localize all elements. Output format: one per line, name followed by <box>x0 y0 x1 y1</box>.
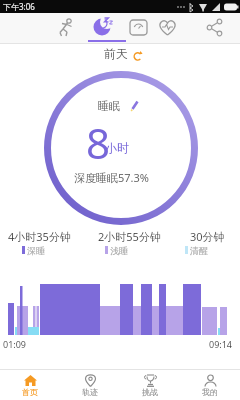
staticText: 深度睡眠57.3% <box>74 170 149 185</box>
button[interactable] <box>204 17 226 39</box>
staticText: 睡眠 <box>98 99 120 113</box>
button[interactable]: 首页 <box>0 370 60 400</box>
button[interactable] <box>90 17 116 39</box>
staticText: 01:09 <box>3 338 27 350</box>
staticText: 前天 <box>104 46 128 61</box>
staticText: 我的 <box>202 387 218 397</box>
staticText: 8 <box>86 114 111 171</box>
staticText: 轨迹 <box>82 387 98 397</box>
button[interactable]: 轨迹 <box>60 370 120 400</box>
staticText: 清醒 <box>190 245 208 256</box>
staticText: 小时 <box>105 140 129 155</box>
staticText: 浅睡 <box>110 245 128 256</box>
button[interactable] <box>127 17 151 39</box>
staticText: 首页 <box>22 387 38 397</box>
button[interactable] <box>54 17 78 39</box>
staticText: 09:14 <box>209 338 233 350</box>
staticText: 深睡 <box>27 245 45 256</box>
staticText: 2小时55分钟 <box>98 229 161 244</box>
staticText: 4小时35分钟 <box>8 229 71 244</box>
staticText: 下午3:06 <box>3 1 35 12</box>
button[interactable]: 我的 <box>180 370 240 400</box>
button[interactable]: 挑战 <box>120 370 180 400</box>
staticText: 30分钟 <box>190 229 225 244</box>
button[interactable]: 前天 <box>0 44 240 64</box>
staticText: 挑战 <box>142 387 158 397</box>
button[interactable] <box>156 17 180 39</box>
